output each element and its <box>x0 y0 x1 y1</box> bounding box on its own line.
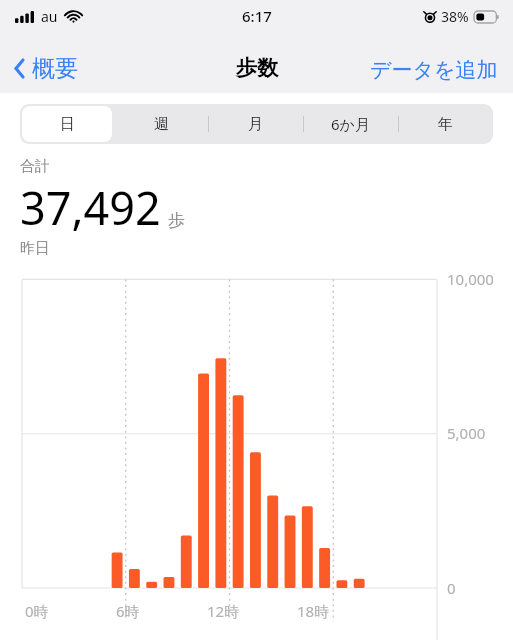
button[interactable]: 年 <box>398 104 493 144</box>
button[interactable]: 月 <box>208 104 303 144</box>
staticText: 6か月 <box>331 114 370 134</box>
staticText: 5,000 <box>447 423 486 443</box>
staticText: 歩 <box>168 210 185 231</box>
button[interactable]: データを追加 <box>366 52 502 88</box>
staticText: 12時 <box>207 601 240 621</box>
staticText: 日 <box>60 115 75 134</box>
other: Back <box>13 57 26 80</box>
button[interactable]: 6か月 <box>303 104 398 144</box>
staticText: 6:17 <box>242 6 272 26</box>
staticText: 合計 <box>20 157 50 176</box>
staticText: 月 <box>248 115 263 134</box>
button[interactable]: 週 <box>114 104 208 144</box>
staticText: データを追加 <box>370 57 498 83</box>
staticText: 38% <box>441 7 469 26</box>
staticText: 0時 <box>25 601 49 621</box>
staticText: 週 <box>154 115 169 134</box>
staticText: 10,000 <box>447 269 494 289</box>
button[interactable]: Back <box>7 49 84 88</box>
staticText: 歩数 <box>236 55 278 81</box>
staticText: 年 <box>438 115 453 134</box>
staticText: 0 <box>447 578 456 598</box>
staticText: 37,492 <box>20 177 161 238</box>
staticText: 6時 <box>116 601 140 621</box>
staticText: 昨日 <box>20 239 50 258</box>
staticText: 概要 <box>32 54 78 83</box>
staticText: au <box>41 7 58 26</box>
staticText: 18時 <box>297 601 330 621</box>
button[interactable]: 日 <box>20 104 114 144</box>
